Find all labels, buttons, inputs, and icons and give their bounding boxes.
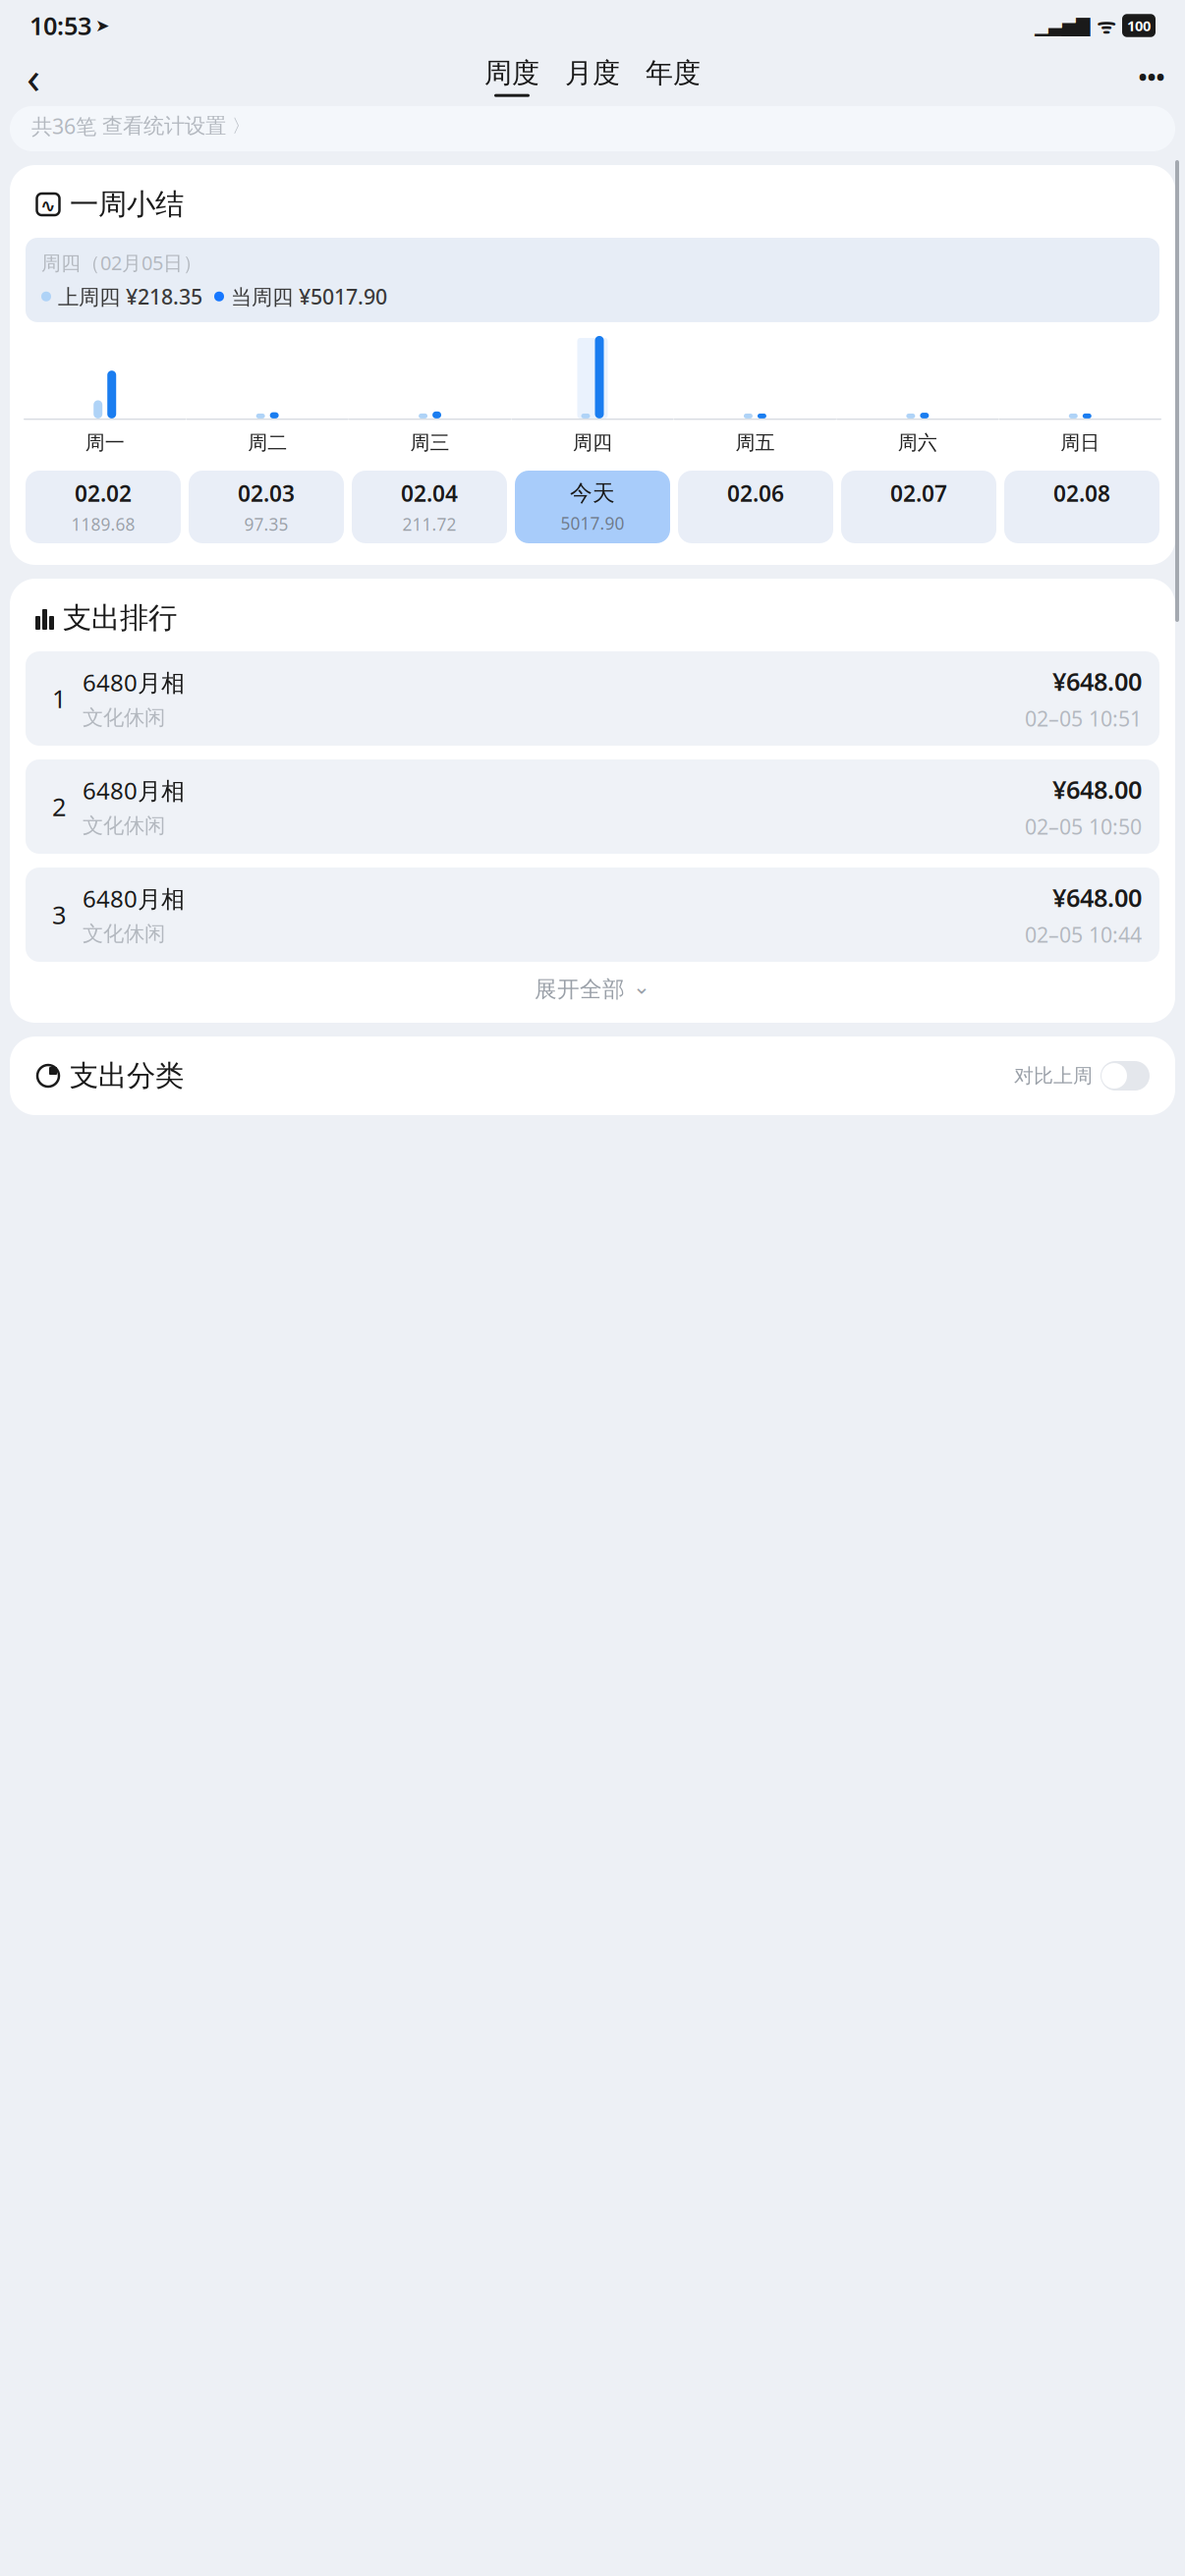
button[interactable]: 02.04 [352,471,507,543]
staticText: 上周四 ¥218.35 [58,283,202,310]
staticText: 1 [52,682,66,715]
button[interactable]: 周度 [484,56,539,97]
staticText: ∿ [40,195,56,216]
staticText: ⌄ [633,974,650,998]
staticText: 100 [1127,16,1151,35]
staticText: 5017.90 [561,512,624,534]
button[interactable]: 更多 [1130,55,1173,98]
button[interactable]: 展开全部 [10,962,1175,1017]
staticText: 02–05 10:51 [1025,705,1142,732]
staticText: 02.06 [727,478,784,508]
staticText: 3 [52,898,66,931]
staticText: 文化休闲 [83,921,165,947]
staticText: 周二 [248,431,287,455]
staticText: 文化休闲 [83,813,165,839]
staticText: 02.04 [401,478,458,508]
button[interactable]: 02.02 [26,471,181,543]
staticText: 一周小结 [70,187,184,222]
staticText: 当周四 ¥5017.90 [231,283,387,310]
button[interactable]: 年度 [646,56,701,97]
button[interactable]: 02.07 [841,471,996,543]
staticText: 02.07 [890,478,947,508]
staticText: 1189.68 [71,513,135,535]
button[interactable]: 1 [26,651,1159,746]
staticText: 周四 [573,431,612,455]
staticText: ➤ [95,16,110,35]
staticText: 月度 [565,56,620,90]
staticText: 支出排行 [63,600,177,636]
button[interactable]: 2 [26,759,1159,854]
staticText: 年度 [646,56,701,90]
staticText: ¥648.00 [1052,665,1142,698]
staticText: 对比上周 [1014,1064,1093,1088]
button[interactable]: 共36笔 [10,106,1175,151]
staticText: 2 [52,790,66,823]
staticText: ▁▃▅▇ [1035,15,1090,36]
staticText: 6480月相 [83,667,185,698]
staticText: 〉 [232,115,251,137]
staticText: 10:53 [29,9,91,42]
staticText: 02–05 10:50 [1025,813,1142,840]
staticText: ᯤ [1097,12,1115,39]
staticText: 周三 [410,431,450,455]
staticText: 97.35 [244,513,288,535]
staticText: 6480月相 [83,883,185,914]
button[interactable]: 02.03 [189,471,344,543]
button[interactable]: 02.08 [1004,471,1159,543]
staticText: 02.08 [1053,478,1110,508]
button[interactable]: 返回 [12,55,55,98]
staticText: ¥648.00 [1052,881,1142,914]
staticText: 02.03 [238,478,295,508]
staticText: 周日 [1061,431,1100,455]
button[interactable]: 3 [26,868,1159,962]
staticText: ‹ [27,47,40,106]
staticText: 周一 [85,431,124,455]
button[interactable]: 02.06 [678,471,833,543]
staticText: 周度 [484,56,539,90]
button[interactable]: 月度 [565,56,620,97]
button[interactable]: 今天 [515,471,670,543]
staticText: ¥648.00 [1052,773,1142,806]
staticText: ••• [1138,61,1165,92]
staticText: 文化休闲 [83,705,165,730]
staticText: 共36笔 [31,112,96,140]
staticText: 02.02 [75,478,132,508]
staticText: 查看统计设置 [102,113,226,139]
button[interactable]: 对比上周 [1014,1061,1150,1091]
staticText: 展开全部 [535,976,625,1003]
staticText: 周五 [735,431,775,455]
staticText: 支出分类 [70,1058,184,1093]
staticText: 6480月相 [83,775,185,806]
staticText: 今天 [570,480,615,507]
staticText: 211.72 [402,513,456,535]
staticText: 周六 [898,431,937,455]
staticText: 周四（02月05日） [41,250,202,276]
staticText: 02–05 10:44 [1025,921,1142,949]
